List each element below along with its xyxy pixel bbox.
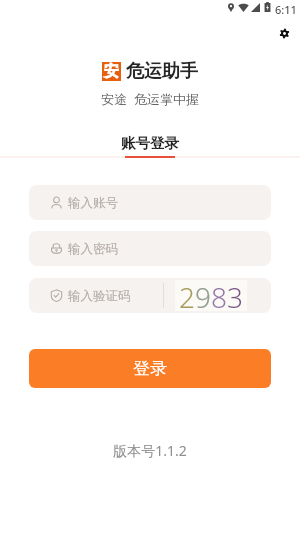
- staticText: 安: [104, 62, 119, 81]
- staticText: 3: [227, 278, 243, 309]
- button[interactable]: 输入账号: [29, 185, 271, 220]
- staticText: 危运助手: [126, 60, 198, 83]
- staticText: 9: [195, 278, 211, 309]
- staticText: 输入密码: [68, 241, 118, 257]
- staticText: 安途 危运掌中握: [0, 90, 300, 108]
- staticText: 输入验证码: [68, 288, 131, 304]
- staticText: 登录: [133, 358, 167, 379]
- staticText: 2: [179, 278, 195, 309]
- button[interactable]: Refresh captcha: [175, 280, 247, 311]
- staticText: 账号登录: [121, 134, 179, 152]
- button[interactable]: Settings: [272, 23, 296, 43]
- staticText: 版本号1.1.2: [0, 441, 300, 460]
- button[interactable]: 登录: [29, 349, 271, 388]
- button[interactable]: 账号登录: [121, 134, 179, 152]
- button[interactable]: 输入验证码: [29, 278, 271, 313]
- staticText: 8: [211, 278, 227, 309]
- staticText: 输入账号: [68, 195, 118, 211]
- button[interactable]: 输入密码: [29, 231, 271, 266]
- staticText: 6:11: [275, 2, 297, 17]
